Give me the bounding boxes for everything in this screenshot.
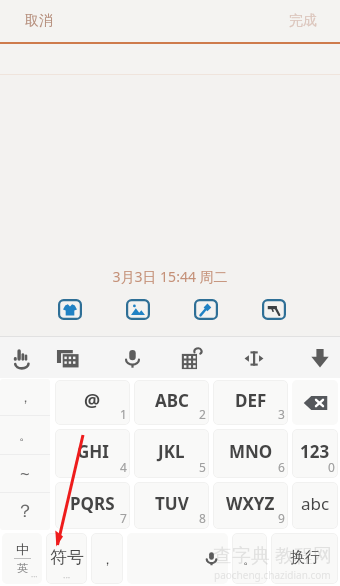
- button[interactable]: ，: [91, 533, 123, 584]
- button[interactable]: 。: [0, 416, 50, 454]
- button[interactable]: 取消: [0, 0, 73, 42]
- button[interactable]: abc: [292, 482, 338, 529]
- staticText: 8: [199, 510, 206, 526]
- staticText: 换行: [290, 548, 320, 567]
- button[interactable]: Insert photo: [125, 298, 150, 320]
- staticText: GHI: [77, 440, 109, 463]
- staticText: 查字典 教程网: [213, 542, 332, 568]
- staticText: 1: [120, 406, 127, 422]
- button[interactable]: ，: [0, 379, 50, 415]
- button[interactable]: 中: [2, 533, 42, 584]
- button[interactable]: Insert clothing tag: [57, 298, 82, 320]
- staticText: paocheng.chazidian.com: [214, 568, 331, 582]
- staticText: 3: [278, 406, 285, 422]
- button[interactable]: GHI: [55, 429, 130, 478]
- button[interactable]: Switch keyboard: [55, 340, 81, 376]
- staticText: ~: [20, 462, 30, 485]
- staticText: JKL: [158, 440, 185, 463]
- staticText: @: [84, 388, 101, 413]
- staticText: 3月3日 15:44 周二: [0, 267, 340, 286]
- button[interactable]: Insert tool: [261, 298, 286, 320]
- button[interactable]: Handwriting input: [8, 340, 34, 376]
- button[interactable]: 符号: [46, 533, 87, 584]
- staticText: 2: [199, 406, 206, 422]
- staticText: DEF: [235, 389, 267, 412]
- button[interactable]: 123: [292, 429, 338, 478]
- staticText: 。: [19, 427, 32, 443]
- button[interactable]: WXYZ: [213, 482, 288, 529]
- staticText: 完成: [289, 12, 317, 30]
- button[interactable]: PQRS: [55, 482, 130, 529]
- button[interactable]: 换行: [271, 533, 338, 584]
- button[interactable]: Move cursor: [241, 340, 267, 376]
- button[interactable]: Hide keyboard: [307, 340, 333, 376]
- staticText: 5: [199, 459, 206, 475]
- button[interactable]: Voice input: [119, 340, 145, 376]
- button[interactable]: 完成: [269, 0, 340, 42]
- staticText: 7: [120, 510, 127, 526]
- staticText: 取消: [25, 12, 53, 30]
- staticText: 0: [328, 459, 335, 475]
- staticText: 9: [278, 510, 285, 526]
- staticText: 英: [17, 561, 28, 575]
- staticText: 中: [16, 541, 29, 557]
- button[interactable]: @: [55, 380, 130, 425]
- button[interactable]: Space / voice input: [127, 533, 228, 584]
- button[interactable]: DEF: [213, 380, 288, 425]
- staticText: 符号: [50, 547, 84, 568]
- button[interactable]: ？: [0, 493, 50, 530]
- staticText: 123: [300, 440, 330, 463]
- button[interactable]: ABC: [134, 380, 209, 425]
- button[interactable]: ~: [0, 455, 50, 492]
- button[interactable]: JKL: [134, 429, 209, 478]
- staticText: ，: [19, 389, 32, 405]
- button[interactable]: Insert pin: [193, 298, 218, 320]
- staticText: ···: [63, 571, 71, 583]
- staticText: TUV: [155, 492, 189, 515]
- button[interactable]: Backspace: [292, 380, 338, 425]
- button[interactable]: Number pad: [178, 340, 204, 376]
- staticText: WXYZ: [226, 492, 275, 515]
- staticText: ···: [31, 571, 38, 582]
- button[interactable]: TUV: [134, 482, 209, 529]
- staticText: PQRS: [70, 492, 115, 515]
- staticText: ，: [101, 551, 114, 567]
- staticText: ？: [16, 500, 34, 523]
- staticText: MNO: [229, 440, 273, 463]
- button[interactable]: 。: [232, 533, 267, 584]
- button[interactable]: MNO: [213, 429, 288, 478]
- staticText: abc: [301, 492, 330, 515]
- staticText: 。: [243, 551, 256, 567]
- staticText: 4: [120, 459, 127, 475]
- staticText: ABC: [155, 389, 189, 412]
- staticText: 6: [278, 459, 285, 475]
